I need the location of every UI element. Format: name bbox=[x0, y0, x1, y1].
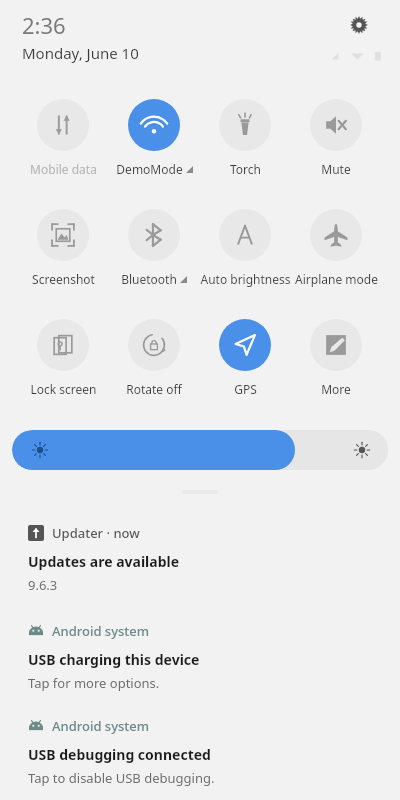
button[interactable]: Mute bbox=[291, 99, 381, 177]
button[interactable]: Screenshot bbox=[18, 209, 108, 287]
button[interactable]: Lock screen bbox=[18, 319, 108, 397]
button[interactable]: Updater · now bbox=[0, 524, 400, 594]
staticText: Monday, June 10 bbox=[22, 43, 139, 63]
button[interactable]: DemoMode bbox=[109, 99, 199, 177]
staticText: GPS bbox=[234, 381, 257, 397]
button[interactable]: Android system bbox=[0, 717, 400, 787]
staticText: Tap to disable USB debugging. bbox=[28, 769, 215, 787]
staticText: Android system bbox=[52, 717, 150, 735]
button[interactable]: Airplane mode bbox=[281, 209, 391, 287]
staticText: 2:36 bbox=[22, 10, 66, 40]
button[interactable]: Rotate off bbox=[109, 319, 199, 397]
button[interactable]: Brightness bbox=[12, 430, 388, 470]
staticText: DemoMode bbox=[116, 161, 183, 177]
staticText: Mute bbox=[321, 161, 351, 177]
staticText: Android system bbox=[52, 622, 150, 640]
button[interactable]: Android system bbox=[0, 622, 400, 692]
staticText: Airplane mode bbox=[295, 271, 378, 287]
staticText: Rotate off bbox=[126, 381, 182, 397]
staticText: 9.6.3 bbox=[28, 576, 58, 594]
button[interactable]: More bbox=[291, 319, 381, 397]
staticText: Updater · now bbox=[52, 524, 140, 542]
staticText: USB charging this device bbox=[28, 650, 200, 669]
button[interactable]: Settings bbox=[344, 10, 374, 40]
staticText: More bbox=[321, 381, 351, 397]
staticText: Torch bbox=[230, 161, 261, 177]
staticText: Auto brightness bbox=[200, 271, 291, 287]
staticText: Mobile data bbox=[30, 161, 97, 177]
button[interactable]: Bluetooth bbox=[109, 209, 199, 287]
button[interactable]: Mobile data bbox=[18, 99, 108, 177]
staticText: Updates are available bbox=[28, 552, 180, 571]
button[interactable]: Torch bbox=[200, 99, 290, 177]
staticText: Tap for more options. bbox=[28, 674, 160, 692]
staticText: Bluetooth bbox=[121, 271, 177, 287]
staticText: Lock screen bbox=[30, 381, 97, 397]
button[interactable]: Auto brightness bbox=[190, 209, 300, 287]
button[interactable]: GPS bbox=[200, 319, 290, 397]
staticText: USB debugging connected bbox=[28, 745, 211, 764]
staticText: Screenshot bbox=[32, 271, 95, 287]
